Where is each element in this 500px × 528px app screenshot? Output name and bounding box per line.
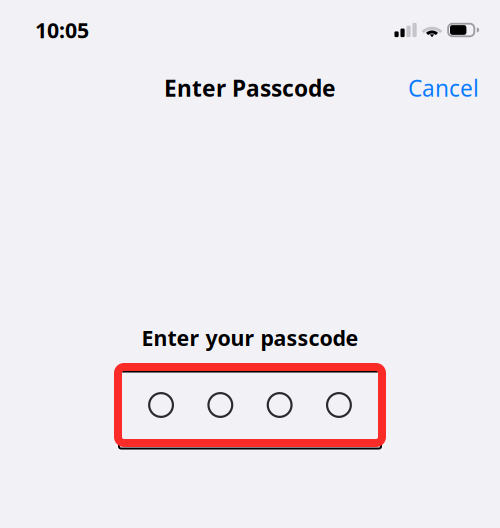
staticText: Cancel: [408, 73, 479, 103]
staticText: Enter your passcode: [141, 324, 358, 352]
button[interactable]: Cancel: [408, 73, 479, 103]
staticText: Enter Passcode: [164, 73, 336, 103]
button[interactable]: Passcode: [110, 357, 390, 453]
staticText: 10:05: [35, 16, 89, 44]
